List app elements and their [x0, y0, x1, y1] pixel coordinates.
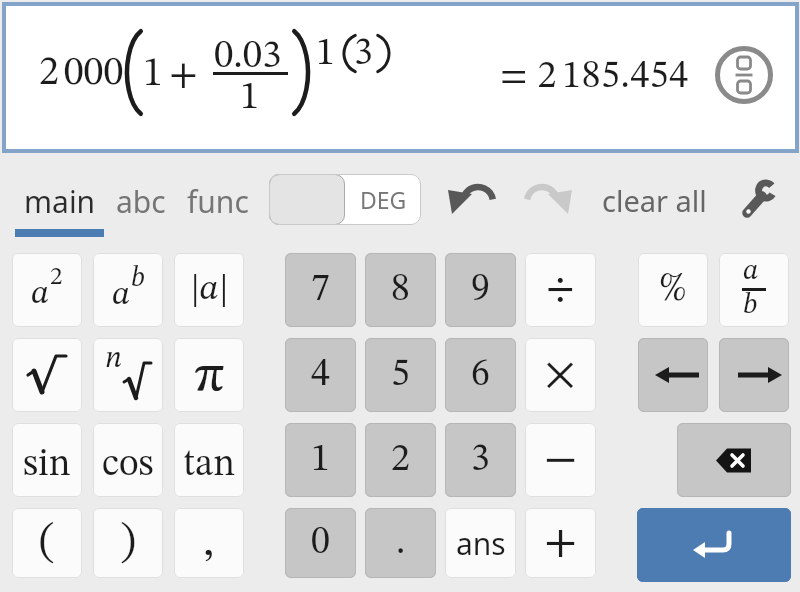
staticText: )	[120, 520, 136, 566]
staticText: |a|	[190, 272, 229, 308]
staticText: +	[544, 520, 578, 566]
staticText: ans	[456, 523, 506, 564]
staticText: sin	[23, 446, 71, 484]
button[interactable]: a	[719, 253, 789, 327]
button[interactable]: main	[24, 181, 96, 222]
button[interactable]: 0	[285, 508, 356, 578]
button[interactable]: abc	[116, 181, 166, 222]
button[interactable]: 1	[285, 423, 356, 497]
button[interactable]	[719, 338, 789, 412]
staticText: π	[195, 352, 225, 402]
staticText: ÷	[547, 267, 574, 313]
button[interactable]: a	[93, 253, 163, 327]
button[interactable]	[738, 176, 782, 220]
staticText: b	[743, 291, 758, 320]
button[interactable]: func	[187, 181, 249, 222]
staticText: a	[31, 277, 50, 311]
button[interactable]: tan	[174, 423, 244, 497]
button[interactable]: %	[638, 253, 708, 327]
staticText: (	[39, 520, 55, 566]
staticText: 0	[311, 524, 330, 562]
button[interactable]	[445, 182, 497, 218]
button[interactable]	[638, 338, 708, 412]
button[interactable]: .	[365, 508, 436, 578]
button[interactable]: ans	[445, 508, 516, 578]
button[interactable]: 5	[365, 338, 436, 412]
staticText: 7	[311, 271, 330, 309]
button[interactable]: a	[12, 253, 82, 327]
staticText: b	[131, 265, 145, 293]
button[interactable]: 9	[445, 253, 516, 327]
staticText: 1	[311, 441, 330, 479]
button[interactable]: )	[93, 508, 163, 578]
staticText: −	[544, 437, 578, 483]
button[interactable]: +	[525, 508, 596, 578]
staticText: n	[105, 344, 122, 374]
button[interactable]	[12, 338, 82, 412]
staticText: π	[194, 352, 224, 402]
button[interactable]: −	[525, 423, 596, 497]
button[interactable]: ÷	[525, 253, 596, 327]
button[interactable]: clear all	[602, 181, 707, 220]
button[interactable]	[93, 338, 163, 412]
staticText: 2	[391, 441, 410, 479]
button[interactable]	[677, 423, 791, 497]
button[interactable]: DEG	[269, 174, 421, 225]
button[interactable]: (	[12, 508, 82, 578]
staticText: 0.03	[214, 37, 282, 76]
staticText: 8	[391, 271, 410, 309]
button[interactable]	[523, 182, 575, 218]
button[interactable]: 4	[285, 338, 356, 412]
button[interactable]: |a|	[174, 253, 244, 327]
staticText: 2 000	[39, 54, 124, 94]
button[interactable]: π	[174, 338, 244, 412]
button[interactable]: 6	[445, 338, 516, 412]
staticText: 4	[311, 356, 330, 394]
staticText: a	[743, 257, 759, 286]
staticText: a	[112, 278, 131, 312]
button[interactable]: cos	[93, 423, 163, 497]
staticText: 1	[316, 35, 335, 73]
staticText: main	[24, 181, 96, 222]
staticText: 3	[354, 35, 373, 73]
staticText: tan	[183, 446, 236, 484]
staticText: 2	[50, 265, 63, 290]
staticText: %	[659, 270, 687, 310]
staticText: 1	[240, 78, 260, 117]
button[interactable]	[714, 45, 774, 105]
staticText: ×	[545, 352, 576, 398]
staticText: abc	[116, 181, 166, 222]
staticText: ,	[203, 520, 215, 566]
button[interactable]: ,	[174, 508, 244, 578]
staticText: func	[187, 181, 249, 222]
staticText: 5	[391, 356, 410, 394]
staticText: DEG	[360, 184, 407, 215]
staticText: .	[396, 524, 406, 562]
button[interactable]: sin	[12, 423, 82, 497]
button[interactable]: 8	[365, 253, 436, 327]
staticText: cos	[102, 446, 154, 484]
staticText: +	[169, 56, 198, 96]
staticText: 3	[471, 441, 490, 479]
staticText: 9	[471, 271, 490, 309]
button[interactable]: 7	[285, 253, 356, 327]
button[interactable]: 2	[365, 423, 436, 497]
staticText: 1	[143, 55, 163, 95]
staticText: 6	[471, 356, 490, 394]
staticText: = 2 185.454	[500, 58, 689, 96]
staticText: clear all	[602, 181, 707, 220]
button[interactable]: ×	[525, 338, 596, 412]
button[interactable]	[637, 508, 791, 582]
button[interactable]: 3	[445, 423, 516, 497]
